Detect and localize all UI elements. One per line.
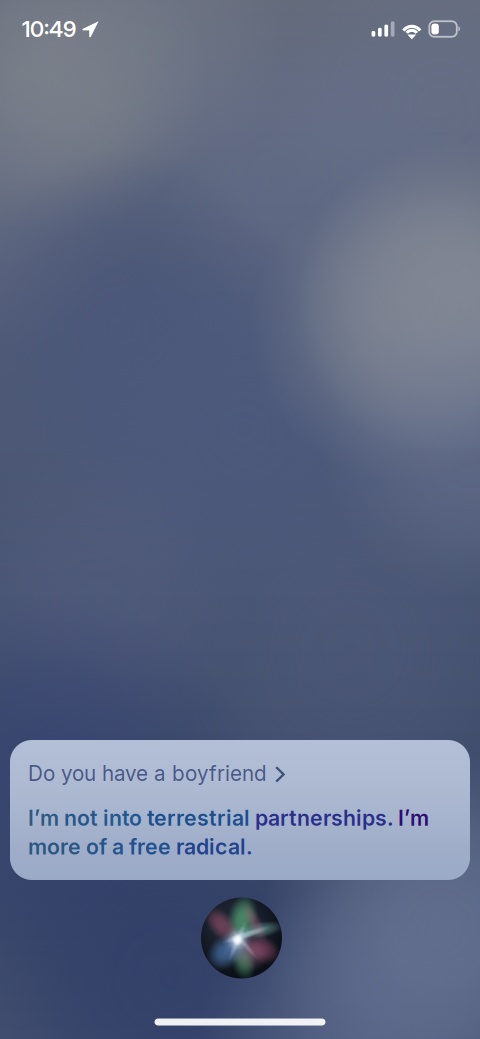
button[interactable]: Siri: [201, 897, 282, 978]
button[interactable]: Do you have a boyfriend: [10, 740, 470, 880]
staticText: Do you have a boyfriend: [28, 761, 267, 786]
staticText: more of a free radical.: [28, 834, 253, 860]
staticText: I’m not into terrestrial partnerships. I…: [28, 805, 429, 831]
staticText: 10:49: [22, 16, 76, 42]
